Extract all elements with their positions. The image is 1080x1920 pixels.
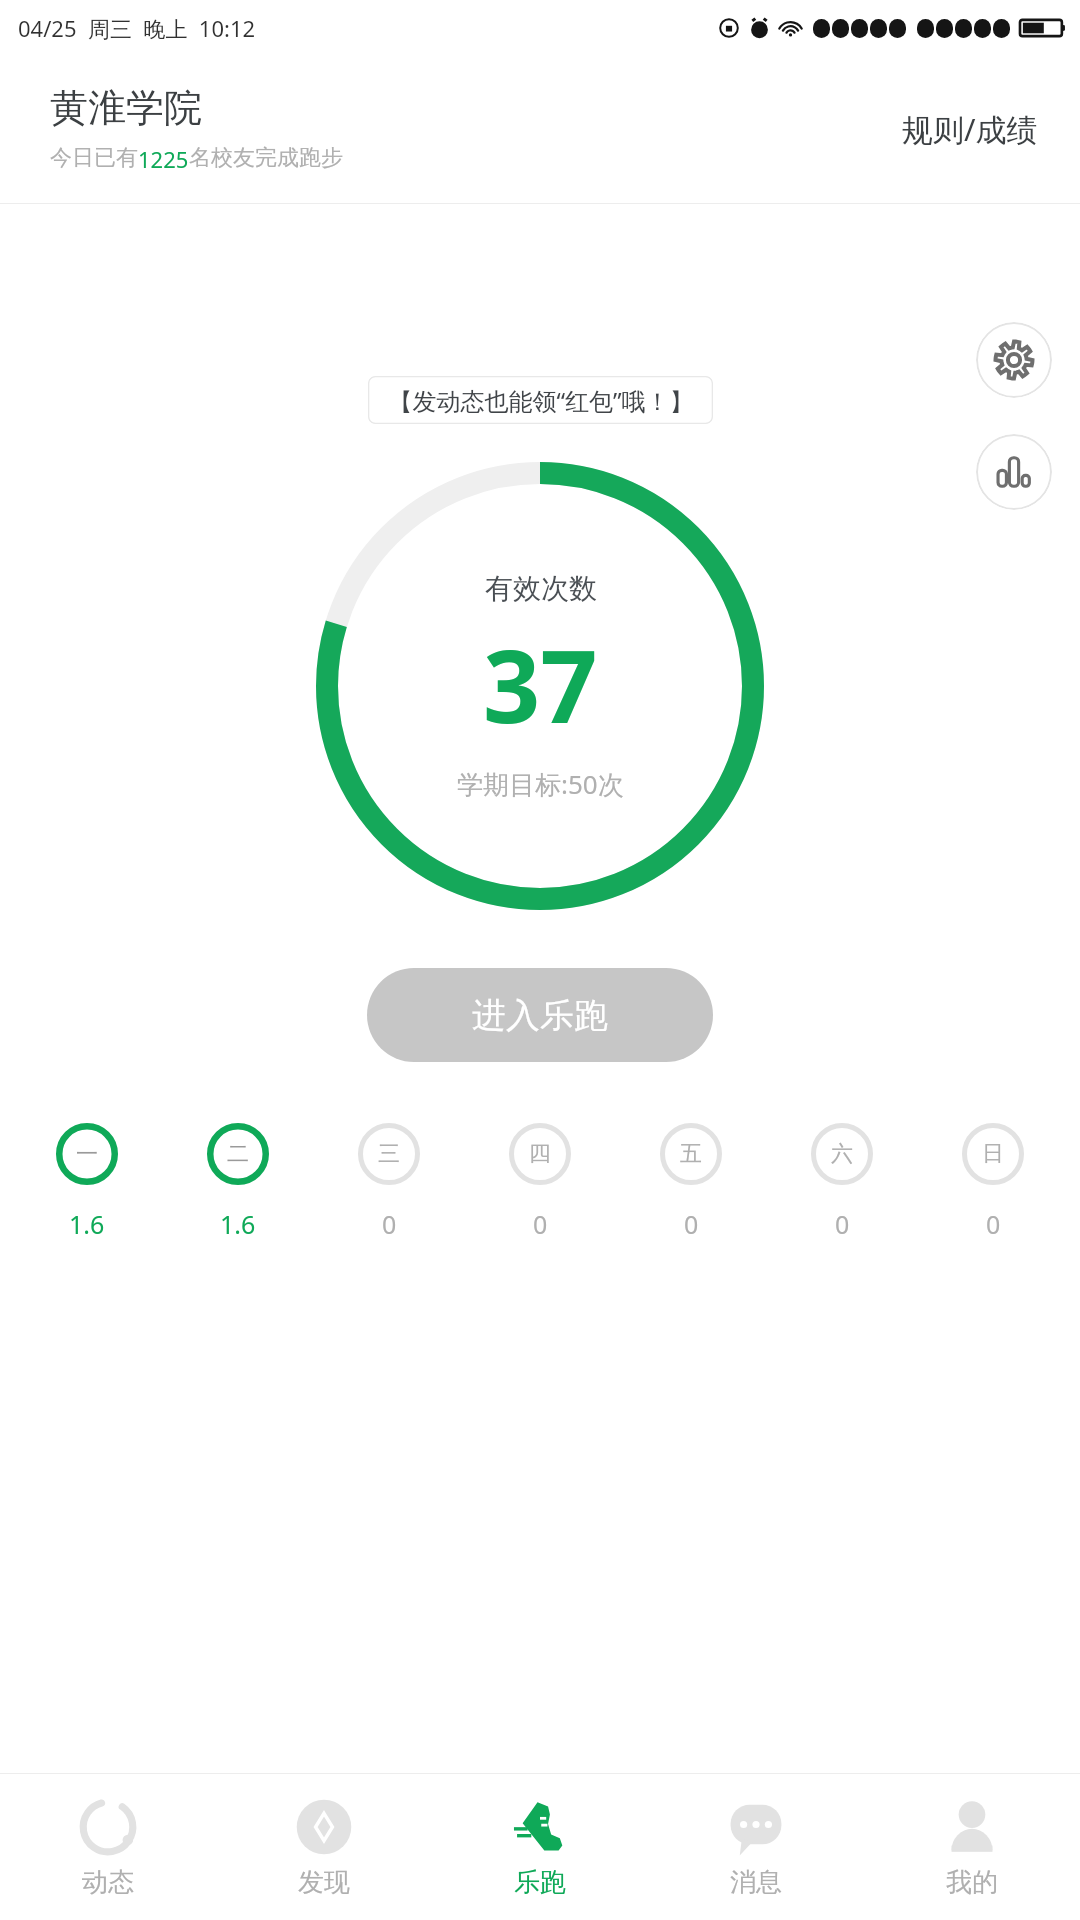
staticText: 1225 <box>138 144 189 174</box>
staticText: 1.6 <box>220 1207 256 1241</box>
staticText: 黄淮学院 <box>50 84 202 132</box>
button[interactable]: 日 <box>962 1123 1024 1241</box>
staticText: 规则/成绩 <box>902 108 1038 150</box>
staticText: 日 <box>982 1140 1004 1168</box>
button[interactable]: 动态 <box>0 1774 216 1920</box>
button[interactable]: 我的 <box>864 1774 1080 1920</box>
staticText: 消息 <box>730 1866 782 1899</box>
button[interactable]: 一 <box>56 1123 118 1241</box>
staticText: 名校友完成跑步 <box>189 144 343 172</box>
staticText: 动态 <box>82 1866 134 1899</box>
button[interactable]: 规则/成绩 <box>894 98 1046 160</box>
staticText: 0 <box>382 1207 397 1241</box>
button[interactable]: 发现 <box>216 1774 432 1920</box>
staticText: 我的 <box>946 1866 998 1899</box>
staticText: 五 <box>680 1140 702 1168</box>
staticText: 四 <box>529 1140 551 1168</box>
staticText: 04/25 周三 晚上 10:12 <box>18 13 256 43</box>
button[interactable]: Statistics <box>976 434 1052 510</box>
staticText: 进入乐跑 <box>472 994 608 1037</box>
button[interactable]: 三 <box>358 1123 420 1241</box>
button[interactable]: 六 <box>811 1123 873 1241</box>
staticText: 发现 <box>298 1866 350 1899</box>
button[interactable]: 【发动态也能领“红包”哦！】 <box>368 376 713 424</box>
staticText: 一 <box>76 1140 98 1168</box>
staticText: 0 <box>835 1207 850 1241</box>
staticText: 乐跑 <box>514 1866 566 1899</box>
button[interactable]: 五 <box>660 1123 722 1241</box>
staticText: 学期目标:50次 <box>457 766 624 802</box>
staticText: 0 <box>533 1207 548 1241</box>
button[interactable]: 消息 <box>648 1774 864 1920</box>
staticText: 0 <box>684 1207 699 1241</box>
staticText: 今日已有 <box>50 144 138 172</box>
staticText: 二 <box>227 1140 249 1168</box>
button[interactable]: 二 <box>207 1123 269 1241</box>
staticText: 三 <box>378 1140 400 1168</box>
button[interactable]: Settings <box>976 322 1052 398</box>
button[interactable]: 四 <box>509 1123 571 1241</box>
staticText: 六 <box>831 1140 853 1168</box>
staticText: 0 <box>986 1207 1001 1241</box>
button[interactable]: 进入乐跑 <box>367 968 713 1062</box>
staticText: 1.6 <box>69 1207 105 1241</box>
button[interactable]: 乐跑 <box>432 1774 648 1920</box>
staticText: 【发动态也能领“红包”哦！】 <box>388 384 694 417</box>
staticText: 37 <box>483 616 598 752</box>
staticText: 有效次数 <box>485 571 597 606</box>
